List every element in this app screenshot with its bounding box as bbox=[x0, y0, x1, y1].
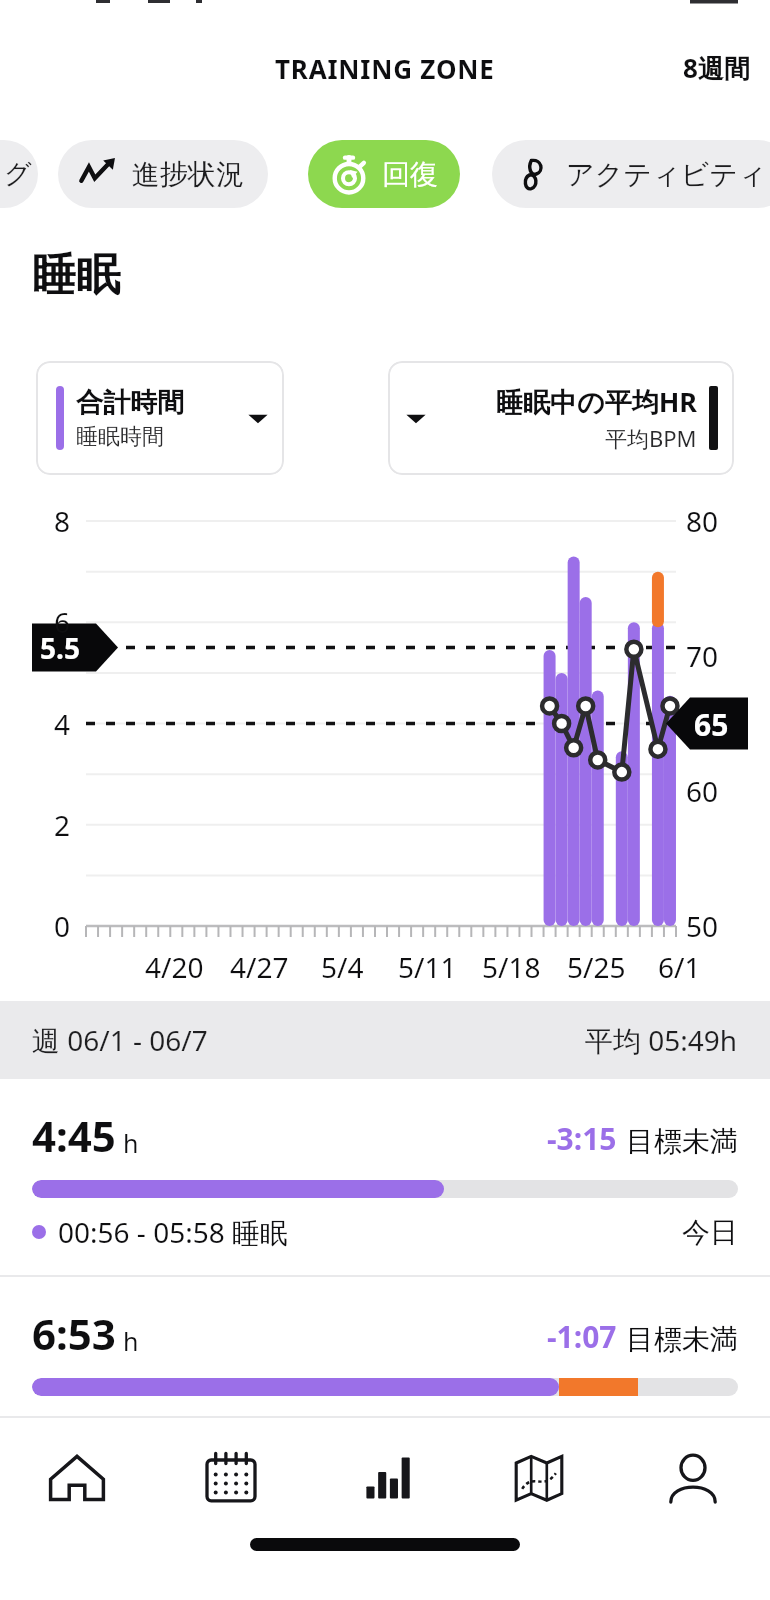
staticText: グ bbox=[4, 157, 32, 191]
staticText: 睡眠 bbox=[32, 248, 120, 303]
button[interactable]: 6:53 bbox=[0, 1277, 770, 1396]
staticText: 平均BPM bbox=[605, 423, 697, 453]
staticText: 目標未満 bbox=[626, 1124, 738, 1159]
staticText: -3:15 bbox=[547, 1118, 617, 1159]
button[interactable]: プロフィール bbox=[616, 1418, 770, 1538]
staticText: 睡眠時間 bbox=[76, 423, 164, 451]
staticText: 8 bbox=[54, 502, 71, 540]
staticText: 6 bbox=[54, 603, 71, 641]
staticText: 5/25 bbox=[567, 948, 626, 986]
staticText: 00:56 - 05:58 睡眠 bbox=[58, 1213, 288, 1251]
staticText: 2 bbox=[54, 806, 71, 844]
staticText: 5/11 bbox=[398, 948, 457, 986]
button[interactable]: 睡眠中の平均HR bbox=[388, 361, 734, 475]
staticText: アクティビティ bbox=[566, 157, 767, 192]
staticText: h bbox=[123, 1324, 139, 1358]
staticText: 5.5 bbox=[40, 629, 80, 667]
staticText: 50 bbox=[686, 907, 719, 945]
staticText: 60 bbox=[686, 772, 719, 810]
staticText: 今日 bbox=[682, 1215, 738, 1250]
staticText: TRAINING ZONE bbox=[275, 51, 495, 86]
staticText: 週 06/1 - 06/7 bbox=[32, 1021, 208, 1059]
staticText: 80 bbox=[686, 502, 719, 540]
button[interactable]: 8週間 bbox=[663, 36, 770, 100]
staticText: -1:07 bbox=[547, 1316, 617, 1357]
staticText: 5/18 bbox=[482, 948, 541, 986]
staticText: 合計時間 bbox=[76, 386, 184, 420]
staticText: 5/4 bbox=[321, 948, 364, 986]
button[interactable]: 進捗状況 bbox=[58, 140, 268, 208]
staticText: 0 bbox=[54, 907, 71, 945]
staticText: 4/20 bbox=[145, 948, 204, 986]
staticText: 目標未満 bbox=[626, 1322, 738, 1357]
staticText: 進捗状況 bbox=[132, 157, 244, 192]
button[interactable]: トレーニング bbox=[0, 140, 38, 208]
staticText: 睡眠中の平均HR bbox=[496, 383, 697, 420]
staticText: h bbox=[123, 1126, 139, 1160]
button[interactable]: ホーム bbox=[0, 1418, 154, 1538]
staticText: 70 bbox=[686, 637, 719, 675]
staticText: 8週間 bbox=[683, 50, 750, 86]
staticText: 4 bbox=[54, 705, 71, 743]
button[interactable]: カレンダー bbox=[154, 1418, 308, 1538]
button[interactable]: 合計時間 bbox=[36, 361, 284, 475]
staticText: 4:45 bbox=[32, 1107, 116, 1164]
button[interactable]: マップ bbox=[462, 1418, 616, 1538]
staticText: 65 bbox=[694, 704, 729, 745]
staticText: 平均 05:49h bbox=[585, 1021, 738, 1059]
staticText: 回復 bbox=[382, 157, 438, 192]
button[interactable]: アクティビティ bbox=[492, 140, 770, 208]
staticText: 6:53 bbox=[32, 1305, 116, 1362]
staticText: 4/27 bbox=[230, 948, 289, 986]
staticText: 6/1 bbox=[658, 948, 701, 986]
button[interactable]: 4:45 bbox=[0, 1079, 770, 1277]
button[interactable]: 統計 bbox=[308, 1418, 462, 1538]
button[interactable]: 回復 bbox=[308, 140, 460, 208]
